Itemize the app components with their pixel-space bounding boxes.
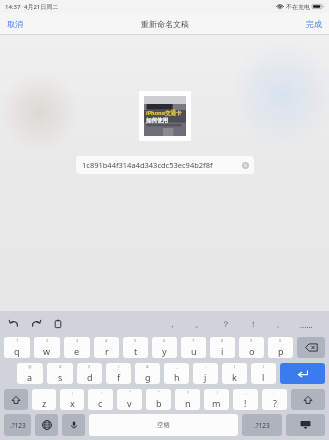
button[interactable]: 4 bbox=[94, 337, 119, 358]
staticText: _ bbox=[176, 364, 178, 369]
button[interactable]: .?123 bbox=[242, 414, 282, 436]
button[interactable]: Clear text bbox=[242, 162, 249, 169]
staticText: e bbox=[74, 345, 80, 357]
staticText: u bbox=[191, 345, 197, 357]
button[interactable]: 空格 bbox=[89, 414, 238, 436]
button[interactable]: 5 bbox=[123, 337, 148, 358]
staticText: 如何使用 bbox=[146, 117, 168, 124]
staticText: k bbox=[232, 371, 237, 383]
staticText: j bbox=[204, 371, 207, 383]
button[interactable]: 6 bbox=[152, 337, 177, 358]
button[interactable]: …… bbox=[293, 311, 320, 337]
staticText: 1 bbox=[16, 338, 19, 343]
button[interactable]: Shift bbox=[291, 389, 325, 410]
button[interactable]: - bbox=[193, 363, 218, 384]
staticText: o bbox=[249, 345, 255, 357]
staticText: 4月21日周二 bbox=[24, 3, 59, 11]
button[interactable]: ； bbox=[60, 389, 84, 410]
button[interactable]: Paste bbox=[51, 317, 65, 331]
button[interactable]: & bbox=[135, 363, 160, 384]
staticText: g bbox=[145, 371, 151, 383]
staticText: 5 bbox=[134, 338, 137, 343]
staticText: t bbox=[134, 345, 138, 357]
button[interactable]: Shift bbox=[4, 389, 28, 410]
button[interactable]: 8 bbox=[210, 337, 235, 358]
staticText: 、 bbox=[276, 319, 284, 329]
button[interactable]: .?123 bbox=[4, 414, 31, 436]
button[interactable]: @ bbox=[17, 363, 43, 384]
button[interactable]: “ bbox=[117, 389, 142, 410]
staticText: 9 bbox=[250, 338, 253, 343]
staticText: ( bbox=[234, 364, 236, 369]
button[interactable]: 1 bbox=[4, 337, 30, 358]
staticText: # bbox=[59, 364, 62, 369]
staticText: …… bbox=[300, 319, 313, 330]
button[interactable]: Hide keyboard bbox=[286, 414, 325, 436]
button[interactable]: ) bbox=[251, 363, 276, 384]
staticText: c bbox=[98, 397, 103, 409]
button[interactable]: 。 bbox=[262, 389, 287, 410]
staticText: ： bbox=[99, 390, 103, 395]
staticText: 1c891b44f314a4d343cdc53ec94b2f8f bbox=[82, 160, 213, 170]
staticText: a bbox=[27, 371, 33, 383]
button[interactable]: ( bbox=[222, 363, 247, 384]
button[interactable]: ， bbox=[158, 311, 185, 337]
button[interactable]: 0 bbox=[268, 337, 293, 358]
staticText: v bbox=[127, 397, 132, 409]
button[interactable]: Return bbox=[280, 363, 325, 384]
button[interactable]: ” bbox=[146, 389, 171, 410]
button[interactable]: Delete bbox=[297, 337, 325, 358]
staticText: 7 bbox=[192, 338, 195, 343]
staticText: & bbox=[146, 364, 149, 369]
button[interactable]: ¥ bbox=[77, 363, 102, 384]
staticText: h bbox=[174, 371, 180, 383]
staticText: 2 bbox=[46, 338, 49, 343]
button[interactable]: # bbox=[47, 363, 73, 384]
staticText: - bbox=[205, 364, 207, 369]
staticText: p bbox=[278, 345, 284, 357]
button[interactable]: 、 bbox=[32, 389, 56, 410]
staticText: 0 bbox=[279, 338, 282, 343]
staticText: 。 bbox=[195, 319, 203, 329]
staticText: 6 bbox=[163, 338, 166, 343]
button[interactable]: Dictation bbox=[62, 414, 85, 436]
staticText: z bbox=[42, 397, 47, 409]
button[interactable]: 7 bbox=[181, 337, 206, 358]
staticText: 3 bbox=[76, 338, 79, 343]
staticText: .?123 bbox=[10, 421, 26, 430]
button[interactable]: 3 bbox=[64, 337, 90, 358]
staticText: 14:37 bbox=[5, 3, 21, 11]
button[interactable]: ！ bbox=[239, 311, 266, 337]
staticText: ¥ bbox=[88, 364, 91, 369]
button[interactable]: ， bbox=[233, 389, 258, 410]
button[interactable]: Change keyboard bbox=[35, 414, 58, 436]
staticText: i bbox=[221, 345, 224, 357]
staticText: f bbox=[117, 371, 121, 383]
button[interactable]: Undo bbox=[7, 317, 21, 331]
button[interactable]: 完成 bbox=[303, 16, 325, 32]
staticText: 空格 bbox=[157, 421, 170, 429]
button[interactable]: _ bbox=[164, 363, 189, 384]
staticText: n bbox=[185, 397, 191, 409]
button[interactable]: Redo bbox=[29, 317, 43, 331]
staticText: ， bbox=[168, 319, 176, 329]
staticText: 8 bbox=[221, 338, 224, 343]
staticText: iPhone交通卡 bbox=[146, 109, 182, 117]
button[interactable]: ！ bbox=[204, 389, 229, 410]
button[interactable]: iPhone交通卡 bbox=[139, 91, 191, 141]
staticText: 、 bbox=[42, 390, 46, 395]
button[interactable]: ？ bbox=[212, 311, 239, 337]
button[interactable]: 2 bbox=[34, 337, 60, 358]
staticText: “ bbox=[129, 390, 131, 395]
staticText: ！ bbox=[249, 319, 257, 329]
button[interactable]: ： bbox=[88, 389, 113, 410]
staticText: x bbox=[70, 397, 75, 409]
button[interactable]: / bbox=[106, 363, 131, 384]
button[interactable]: 9 bbox=[239, 337, 264, 358]
button[interactable]: ？ bbox=[175, 389, 200, 410]
staticText: ? bbox=[273, 397, 277, 409]
button[interactable]: 取消 bbox=[4, 16, 26, 32]
button[interactable]: 1c891b44f314a4d343cdc53ec94b2f8f bbox=[76, 156, 254, 174]
